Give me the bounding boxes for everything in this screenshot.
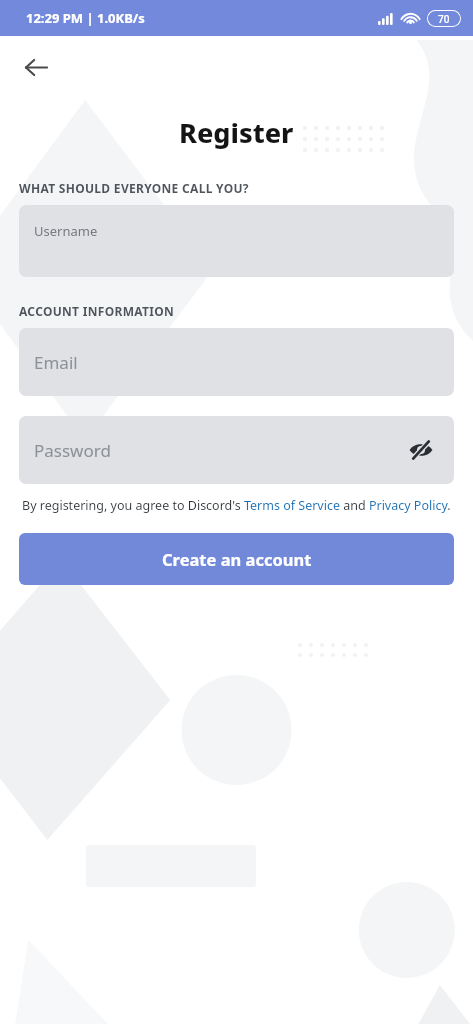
- staticText: WHAT SHOULD EVERYONE CALL YOU?: [19, 180, 249, 196]
- staticText: 70: [438, 12, 450, 26]
- button[interactable]: Create an account: [19, 533, 454, 585]
- staticText: By registering, you agree to Discord's T…: [22, 497, 451, 514]
- staticText: Password: [34, 439, 111, 462]
- button[interactable]: Back: [14, 45, 58, 89]
- staticText: Username: [34, 222, 98, 240]
- staticText: Create an account: [162, 548, 312, 570]
- button[interactable]: Password: [19, 416, 454, 484]
- button[interactable]: Show password: [401, 430, 441, 470]
- button[interactable]: Username: [19, 205, 454, 277]
- staticText: Email: [34, 351, 78, 374]
- staticText: Register: [179, 114, 294, 151]
- staticText: 12:29 PM | 1.0KB/s: [26, 9, 145, 27]
- button[interactable]: Email: [19, 328, 454, 396]
- staticText: ACCOUNT INFORMATION: [19, 303, 175, 319]
